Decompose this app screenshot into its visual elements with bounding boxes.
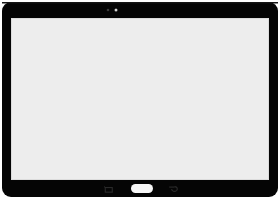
button[interactable]: Recent apps bbox=[100, 182, 116, 196]
button[interactable]: Back bbox=[165, 182, 181, 196]
button[interactable]: Home bbox=[131, 184, 153, 193]
